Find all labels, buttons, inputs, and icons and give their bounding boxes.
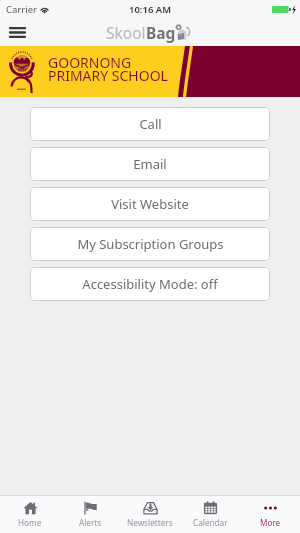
staticText: Skool [106,22,146,43]
button[interactable]: Accessibility Mode: off [30,267,270,301]
button[interactable]: Visit Website [30,187,270,221]
staticText: Newsletters [127,517,173,528]
staticText: GOORNONG PRIMARY SCHOOL [48,53,168,85]
button[interactable]: Home [0,496,60,533]
staticText: My Subscription Groups [77,235,224,253]
staticText: More [260,517,281,528]
button[interactable]: Menu [6,21,28,43]
staticText: Call [139,115,162,133]
button[interactable]: Call [30,107,270,141]
button[interactable]: More [240,496,300,533]
staticText: Carrier [6,3,37,16]
staticText: Visit Website [111,195,189,213]
staticText: Alerts [79,517,102,528]
button[interactable]: Alerts [60,496,120,533]
staticText: 10:16 AM [129,3,172,16]
staticText: Email [133,155,167,173]
button[interactable]: Email [30,147,270,181]
button[interactable]: My Subscription Groups [30,227,270,261]
button[interactable]: Newsletters [120,496,180,533]
button[interactable]: Calendar [180,496,240,533]
staticText: Accessibility Mode: off [82,275,218,293]
staticText: Home [18,517,42,528]
staticText: Calendar [193,517,228,528]
staticText: Bag [146,22,176,43]
